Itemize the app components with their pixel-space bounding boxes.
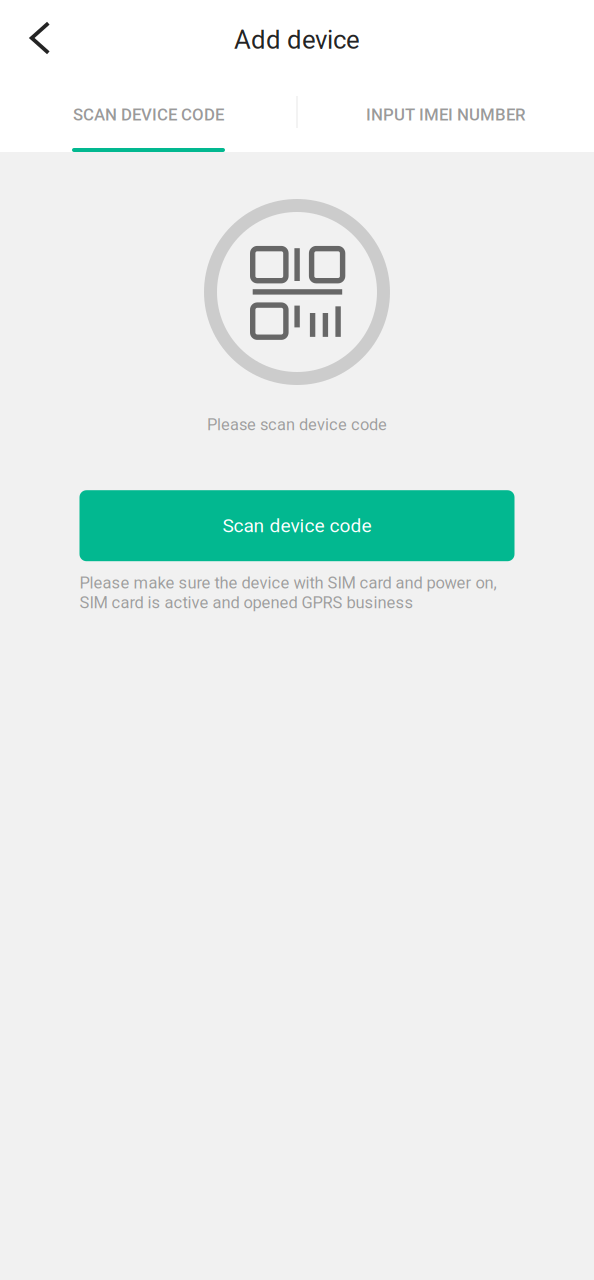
button[interactable]: Back (8, 6, 72, 70)
staticText: Scan device code (222, 514, 371, 537)
staticText: Please scan device code (207, 415, 387, 434)
staticText: Add device (234, 25, 360, 55)
button[interactable]: SCAN DEVICE CODE (0, 80, 297, 152)
staticText: INPUT IMEI NUMBER (366, 105, 525, 125)
staticText: SIM card is active and opened GPRS busin… (79, 593, 413, 612)
button[interactable]: Scan device code (79, 490, 514, 561)
staticText: Please make sure the device with SIM car… (79, 573, 496, 593)
staticText: SCAN DEVICE CODE (73, 105, 224, 125)
button[interactable]: INPUT IMEI NUMBER (297, 80, 594, 152)
